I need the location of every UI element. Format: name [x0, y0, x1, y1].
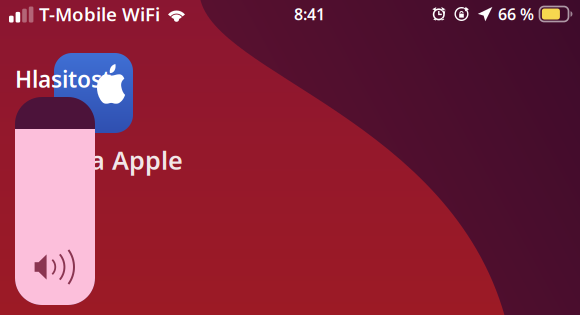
staticText: 8:41: [294, 3, 325, 25]
staticText: 66 %: [498, 3, 534, 25]
button[interactable]: Apple: [54, 53, 133, 133]
staticText: a Apple: [90, 143, 183, 177]
button[interactable]: Volume: [15, 97, 95, 305]
staticText: Hlasitost: [15, 64, 111, 94]
staticText: T-Mobile WiFi: [39, 2, 160, 26]
